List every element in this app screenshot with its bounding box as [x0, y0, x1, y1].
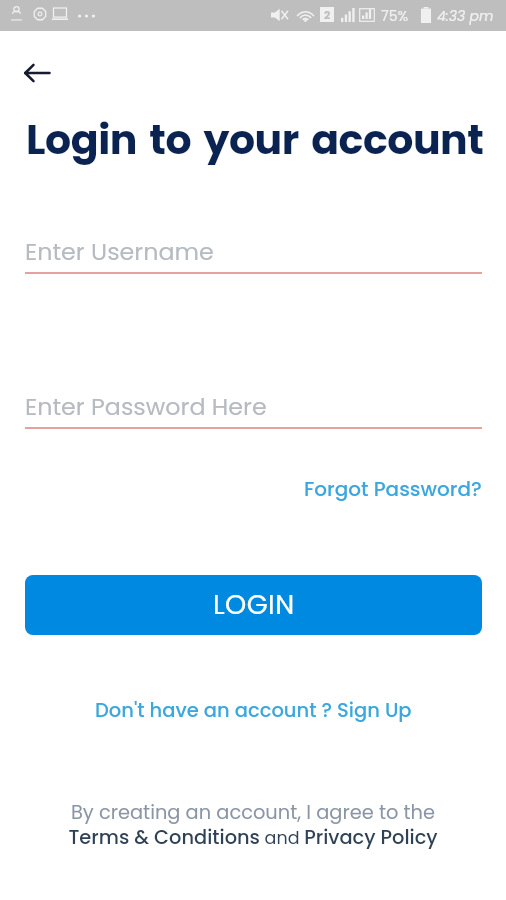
button[interactable]: Don't have an account ? Sign Up: [83, 687, 424, 734]
staticText: Enter Username: [25, 235, 214, 268]
staticText: Enter Password Here: [25, 390, 267, 423]
staticText: 75%: [381, 6, 409, 26]
button[interactable]: Forgot Password?: [288, 465, 506, 513]
button[interactable]: Back: [16, 52, 57, 93]
staticText: 4:33 pm: [437, 6, 494, 26]
button[interactable]: LOGIN: [25, 575, 482, 635]
staticText: LOGIN: [213, 586, 295, 624]
button[interactable]: By creating an account, I agree to the T…: [68, 799, 438, 850]
staticText: Login to your account: [26, 111, 484, 168]
staticText: 2: [324, 7, 331, 22]
